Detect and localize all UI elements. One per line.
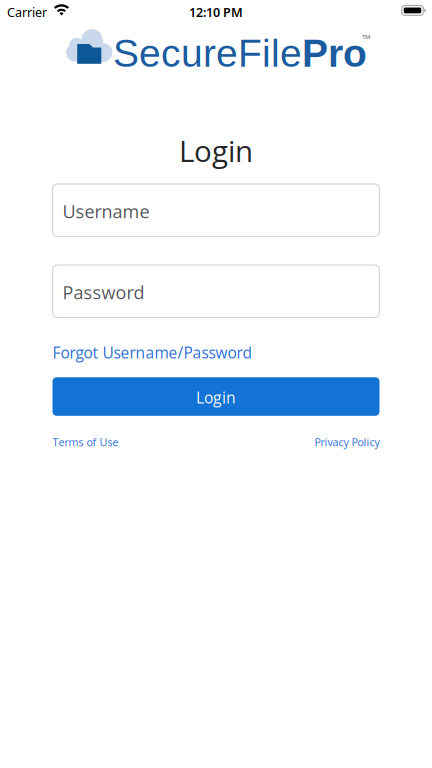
- staticText: Carrier: [7, 3, 47, 21]
- button[interactable]: Username: [52, 184, 379, 236]
- staticText: TM: [362, 32, 371, 41]
- button[interactable]: Privacy Policy: [314, 435, 379, 449]
- staticText: Privacy Policy: [314, 435, 379, 449]
- staticText: 12:10 PM: [189, 3, 243, 21]
- button[interactable]: Terms of Use: [52, 435, 118, 449]
- button[interactable]: Login: [52, 377, 379, 416]
- staticText: Username: [62, 199, 149, 223]
- staticText: SecureFile: [113, 31, 302, 75]
- button[interactable]: Password: [52, 265, 379, 317]
- staticText: Password: [62, 280, 144, 304]
- staticText: Pro: [302, 31, 367, 75]
- staticText: Login: [179, 130, 253, 171]
- staticText: Terms of Use: [52, 435, 118, 449]
- staticText: Forgot Username/Password: [52, 342, 251, 363]
- button[interactable]: Forgot Username/Password: [52, 342, 251, 363]
- staticText: Login: [196, 387, 236, 408]
